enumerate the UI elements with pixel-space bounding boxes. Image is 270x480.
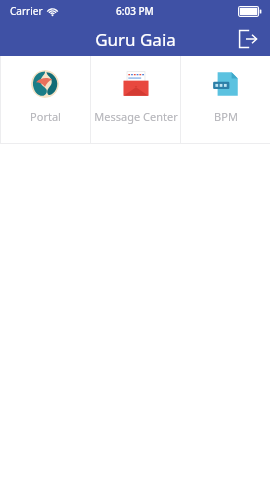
button[interactable]: Message Center [91, 56, 180, 144]
staticText: Portal [30, 109, 61, 124]
staticText: Guru Gaia [95, 28, 176, 51]
staticText: Message Center [94, 109, 178, 124]
staticText: 6:03 PM [116, 4, 154, 18]
staticText: BPM [214, 109, 238, 124]
button[interactable]: Log out [226, 22, 270, 56]
staticText: Carrier [10, 4, 43, 18]
button[interactable]: BPM [181, 56, 270, 144]
button[interactable]: Portal [0, 56, 90, 144]
